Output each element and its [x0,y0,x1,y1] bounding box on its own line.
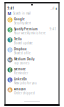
staticText: M [8,57,12,62]
button[interactable]: M [5,56,58,66]
staticText: Trello [14,37,22,41]
staticText: Medium Daily [14,57,34,61]
staticText: Google [14,17,25,21]
button[interactable]: T [5,36,58,46]
staticText: Spotify Premium [14,27,38,31]
staticText: E [9,67,11,72]
staticText: 9:41 [49,27,56,31]
button[interactable]: L [5,76,58,86]
staticText: L [9,77,11,82]
staticText: Dropbox [14,47,26,51]
staticText: 9:41 [7,7,14,10]
staticText: Shared a file [14,51,31,55]
button[interactable]: G [5,16,58,26]
staticText: Search in mail [13,12,31,15]
staticText: Reminder [14,71,28,75]
staticText: Security alert [14,21,31,25]
staticText: New jobs for you [14,81,37,85]
staticText: M [7,11,11,16]
staticText: S [9,27,11,32]
staticText: Amazon [14,87,26,91]
staticText: Order shipped [14,91,35,95]
staticText: D [8,47,11,52]
button[interactable]: E [5,66,58,76]
staticText: ..ıl ▮ [50,7,56,10]
button[interactable]: A [5,86,58,96]
staticText: LinkedIn [14,77,27,81]
staticText: A [8,87,11,92]
staticText: T [9,37,11,42]
button[interactable]: D [5,46,58,56]
staticText: Your weekly mix is here [14,31,46,35]
staticText: Board update [14,41,33,45]
staticText: G [8,17,11,22]
staticText: Evernote [14,67,26,71]
button[interactable]: S [5,26,58,36]
staticText: Top stories [14,61,29,65]
